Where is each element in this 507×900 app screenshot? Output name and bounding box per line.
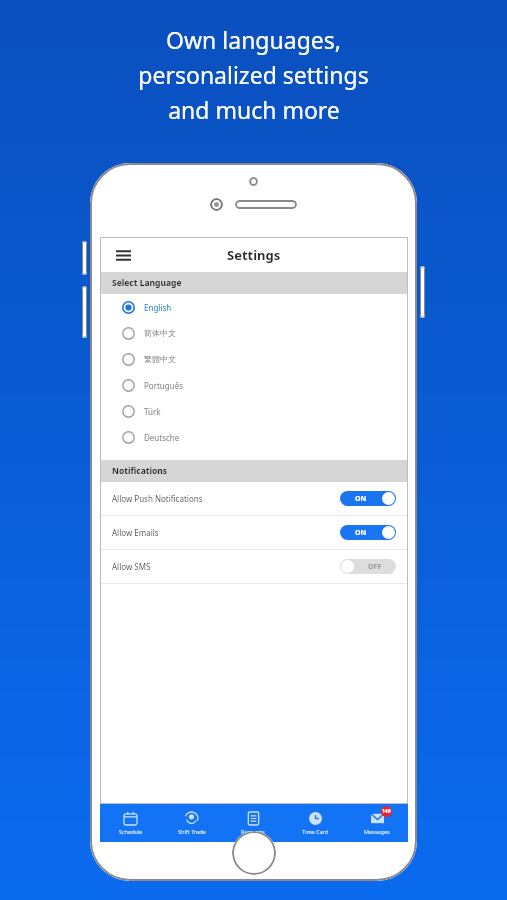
button[interactable]: Time Card — [284, 804, 346, 842]
button[interactable]: Menu — [110, 242, 136, 268]
staticText: Allow Emails — [112, 527, 159, 538]
staticText: Messages — [364, 828, 390, 835]
button[interactable]: Home — [232, 831, 276, 875]
staticText: Requests — [241, 828, 265, 835]
staticText: Shift Trade — [178, 828, 206, 835]
button[interactable]: 简体中文 — [100, 320, 408, 346]
staticText: Notifications — [112, 465, 168, 477]
button[interactable]: Allow Push Notifications — [100, 482, 408, 515]
staticText: Time Card — [302, 828, 329, 835]
staticText: personalized settings — [138, 59, 369, 90]
staticText: ON — [355, 528, 367, 538]
staticText: English — [144, 302, 172, 313]
staticText: 繁體中文 — [144, 354, 176, 364]
staticText: Türk — [144, 406, 161, 417]
staticText: Deutsche — [144, 432, 180, 443]
staticText: Own languages, — [166, 24, 341, 55]
staticText: OFF — [368, 562, 382, 572]
staticText: Settings — [227, 246, 281, 264]
staticText: Schedule — [119, 828, 143, 835]
staticText: Allow Push Notifications — [112, 493, 203, 504]
button[interactable]: Allow Emails — [100, 516, 408, 549]
staticText: and much more — [168, 94, 340, 125]
staticText: Select Language — [112, 277, 182, 289]
staticText: 149 — [382, 808, 391, 815]
button[interactable]: 繁體中文 — [100, 346, 408, 372]
button[interactable]: Allow SMS — [100, 550, 408, 583]
button[interactable]: Schedule — [100, 804, 161, 842]
button[interactable]: Deutsche — [100, 424, 408, 450]
button[interactable]: 149 — [346, 804, 408, 842]
staticText: ON — [355, 494, 367, 504]
button[interactable]: Requests — [222, 804, 284, 842]
button[interactable]: English — [100, 294, 408, 320]
staticText: Allow SMS — [112, 561, 151, 572]
button[interactable]: Shift Trade — [161, 804, 222, 842]
button[interactable]: Türk — [100, 398, 408, 424]
staticText: 简体中文 — [144, 328, 176, 338]
staticText: Português — [144, 380, 184, 391]
button[interactable]: Português — [100, 372, 408, 398]
